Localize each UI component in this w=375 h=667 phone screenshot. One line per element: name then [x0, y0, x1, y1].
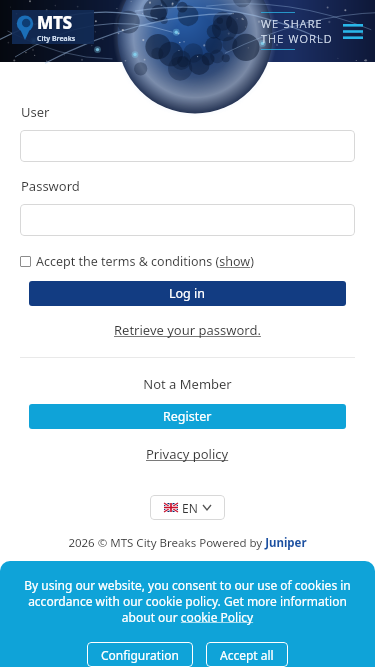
button[interactable]: MTS City Breaks home	[12, 10, 94, 44]
button[interactable]: Accept the terms & conditions (show)	[20, 253, 355, 270]
staticText: User	[21, 103, 50, 121]
staticText: THE WORLD	[261, 31, 333, 46]
staticText: WE SHARE	[261, 16, 323, 31]
button[interactable]: Register	[29, 404, 346, 429]
staticText: Configuration	[101, 647, 179, 663]
staticText: Accept the terms & conditions (show)	[36, 253, 254, 270]
staticText: MTS	[37, 11, 72, 34]
staticText: Register	[163, 408, 212, 425]
button[interactable]: Change language, English	[150, 495, 225, 520]
button[interactable]: Accept all	[206, 642, 288, 667]
staticText: Log in	[169, 285, 206, 302]
staticText: Not a Member	[0, 375, 375, 393]
button[interactable]: Log in	[29, 281, 346, 306]
button[interactable]: Open menu	[339, 17, 367, 45]
staticText: EN	[182, 500, 198, 516]
button[interactable]	[20, 130, 355, 162]
staticText: Accept all	[220, 647, 274, 663]
staticText: 2026 © MTS City Breaks Powered by Junipe…	[68, 535, 307, 551]
staticText: City Breaks	[37, 34, 76, 44]
button[interactable]: Configuration	[87, 642, 193, 667]
button[interactable]: Privacy policy	[140, 443, 235, 465]
staticText: By using our website, you consent to our…	[16, 577, 359, 625]
button[interactable]	[20, 204, 355, 236]
staticText: Password	[21, 177, 80, 195]
button[interactable]: Retrieve your password.	[108, 319, 267, 341]
